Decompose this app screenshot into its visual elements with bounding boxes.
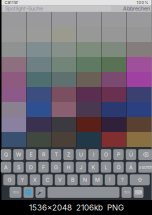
- button[interactable]: P: [113, 149, 124, 160]
- staticText: I: [93, 151, 94, 158]
- button[interactable]: 🎤: [35, 187, 45, 198]
- button[interactable]: 🌐: [23, 187, 33, 198]
- staticText: R: [42, 151, 45, 158]
- button[interactable]: X: [30, 174, 40, 185]
- button[interactable]: N: [80, 174, 90, 185]
- button[interactable]: ⌨: [133, 187, 143, 198]
- staticText: Y: [20, 177, 24, 183]
- button[interactable]: F: [38, 162, 49, 173]
- button[interactable]: Z: [63, 149, 74, 160]
- staticText: G: [54, 164, 58, 170]
- button[interactable]: Abbrechen: [123, 5, 150, 12]
- staticText: K: [91, 164, 95, 170]
- staticText: .?123: [12, 191, 19, 194]
- button[interactable]: Ö: [113, 162, 124, 173]
- button[interactable]: K: [88, 162, 99, 173]
- button[interactable]: B: [67, 174, 78, 185]
- staticText: Z: [67, 151, 70, 158]
- button[interactable]: ⌫: [138, 149, 152, 160]
- button[interactable]: ⇧: [130, 174, 150, 185]
- button[interactable]: G: [51, 162, 61, 173]
- button[interactable]: Suchen: [138, 162, 152, 173]
- staticText: J: [79, 164, 82, 170]
- button[interactable]: D: [26, 162, 36, 173]
- staticText: !: [109, 177, 111, 183]
- staticText: H: [66, 164, 70, 170]
- staticText: Ü: [129, 151, 133, 158]
- staticText: 1536x2048 2106kb PNG: [29, 203, 124, 212]
- button[interactable]: E: [26, 149, 36, 160]
- staticText: Ö: [116, 164, 120, 170]
- staticText: ?: [121, 177, 124, 183]
- staticText: 100%: [136, 0, 148, 5]
- staticText: X: [33, 177, 37, 183]
- staticText: .?123: [123, 191, 130, 194]
- staticText: C: [45, 177, 49, 183]
- staticText: M: [95, 177, 100, 183]
- button[interactable]: W: [13, 149, 24, 160]
- staticText: 🎤: [37, 189, 44, 195]
- button[interactable]: Spotlight-Suche: [3, 6, 111, 11]
- button[interactable]: U: [76, 149, 86, 160]
- button[interactable]: V: [55, 174, 65, 185]
- button[interactable]: J: [76, 162, 86, 173]
- staticText: O: [104, 151, 108, 158]
- button[interactable]: !: [105, 174, 115, 185]
- button[interactable]: O: [101, 149, 111, 160]
- button[interactable]: Y: [17, 174, 28, 185]
- staticText: ⇧: [137, 177, 142, 183]
- button[interactable]: T: [51, 149, 61, 160]
- button[interactable]: Ü: [126, 149, 136, 160]
- staticText: B: [71, 177, 74, 183]
- button[interactable]: Q: [1, 149, 11, 160]
- staticText: S: [17, 164, 20, 170]
- staticText: Abbrechen: [123, 5, 150, 12]
- button[interactable]: I: [88, 149, 99, 160]
- staticText: Suchen: [139, 165, 152, 170]
- button[interactable]: .?123: [9, 187, 21, 198]
- button[interactable]: Ä: [126, 162, 136, 173]
- button[interactable]: ⇧: [3, 174, 15, 185]
- button[interactable]: ?: [117, 174, 128, 185]
- button[interactable]: [47, 187, 119, 198]
- button[interactable]: C: [42, 174, 53, 185]
- button[interactable]: R: [38, 149, 49, 160]
- staticText: U: [79, 151, 83, 158]
- staticText: D: [29, 164, 33, 170]
- staticText: ⌫: [142, 151, 148, 158]
- staticText: Spotlight-Suche: [5, 5, 43, 12]
- staticText: Q: [4, 151, 8, 158]
- button[interactable]: L: [101, 162, 111, 173]
- staticText: T: [54, 151, 57, 158]
- staticText: 🌐: [25, 189, 32, 195]
- button[interactable]: M: [92, 174, 103, 185]
- staticText: Ä: [129, 164, 133, 170]
- staticText: W: [16, 151, 21, 158]
- staticText: N: [83, 177, 87, 183]
- staticText: F: [42, 164, 45, 170]
- staticText: ⇧: [7, 177, 12, 183]
- staticText: ⌨: [134, 189, 142, 195]
- button[interactable]: .?123: [121, 187, 131, 198]
- button[interactable]: S: [13, 162, 24, 173]
- button[interactable]: H: [63, 162, 74, 173]
- staticText: V: [58, 177, 62, 183]
- staticText: L: [104, 164, 107, 170]
- button[interactable]: A: [1, 162, 11, 173]
- staticText: A: [4, 164, 8, 170]
- staticText: E: [29, 151, 32, 158]
- staticText: Carrier: [4, 0, 18, 5]
- staticText: P: [117, 151, 120, 158]
